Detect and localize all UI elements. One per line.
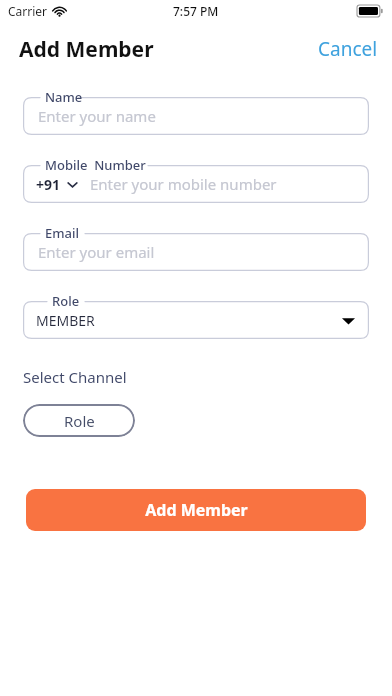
staticText: Role: [64, 411, 95, 431]
button[interactable]: MEMBER: [23, 301, 369, 339]
button[interactable]: Role: [23, 404, 135, 437]
staticText: Carrier: [8, 3, 48, 19]
button[interactable]: Enter your email: [23, 233, 369, 271]
button[interactable]: Cancel: [304, 30, 392, 68]
staticText: Role: [52, 292, 80, 310]
staticText: Select Channel: [23, 367, 127, 387]
other: Open role dropdown: [342, 314, 355, 327]
staticText: 7:57 PM: [173, 3, 219, 19]
staticText: Add Member: [145, 499, 248, 521]
staticText: Mobile Number: [45, 156, 146, 174]
staticText: Name: [45, 88, 83, 106]
button[interactable]: Enter your name: [23, 97, 369, 135]
button[interactable]: +91: [23, 165, 369, 203]
staticText: Cancel: [318, 36, 378, 62]
staticText: Email: [45, 224, 80, 242]
staticText: MEMBER: [36, 311, 95, 330]
staticText: Enter your email: [38, 242, 155, 262]
staticText: Enter your name: [38, 106, 156, 126]
button[interactable]: Add Member: [26, 489, 366, 531]
staticText: +91: [36, 175, 61, 194]
staticText: Add Member: [19, 35, 154, 64]
staticText: Enter your mobile number: [90, 174, 277, 194]
